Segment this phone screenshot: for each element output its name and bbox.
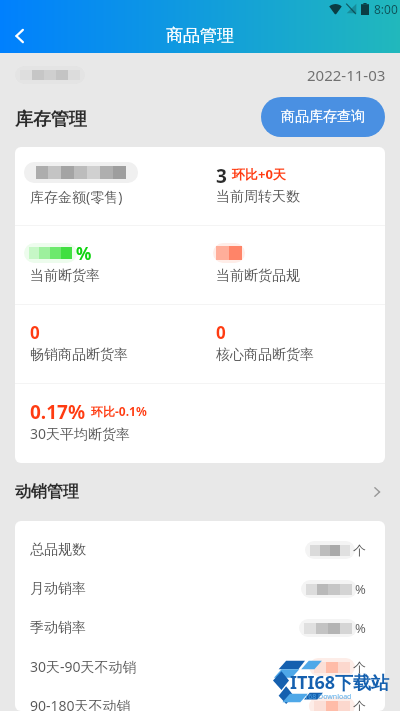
staticText: 季动销率	[30, 619, 86, 637]
button[interactable]: 90-180天不动销	[30, 686, 368, 711]
staticText: 当前断货率	[30, 267, 100, 285]
staticText: 库存管理	[15, 108, 87, 131]
staticText: 当前断货品规	[216, 267, 300, 285]
staticText: 环比+0天	[232, 165, 286, 183]
staticText: 核心商品断货率	[216, 346, 314, 364]
button[interactable]: 动销管理	[15, 463, 385, 521]
staticText: %	[355, 619, 366, 637]
button[interactable]: 商品库存查询	[261, 97, 385, 137]
staticText: 环比-0.1%	[91, 403, 147, 419]
staticText: %	[76, 242, 92, 263]
staticText: IT168 Download	[298, 692, 352, 702]
staticText: 个	[353, 542, 366, 558]
staticText: 畅销商品断货率	[30, 346, 128, 364]
staticText: 商品库存查询	[281, 108, 365, 126]
staticText: 库存金额(零售)	[30, 187, 123, 206]
staticText: 个	[353, 698, 366, 711]
button[interactable]: 月动销率	[30, 569, 368, 608]
button[interactable]: 季动销率	[30, 608, 368, 647]
button[interactable]: 30天-90天不动销	[30, 647, 368, 686]
staticText: 总品规数	[30, 541, 86, 559]
staticText: 30天-90天不动销	[30, 657, 137, 676]
staticText: 8:00	[374, 1, 398, 17]
staticText: 30天平均断货率	[30, 424, 131, 443]
staticText: 90-180天不动销	[30, 696, 131, 711]
staticText: 当前周转天数	[216, 188, 300, 206]
staticText: 0.17%	[30, 399, 86, 420]
staticText: 0	[30, 321, 40, 342]
staticText: 个	[353, 659, 366, 675]
staticText: 0	[216, 321, 226, 342]
staticText: 动销管理	[15, 482, 79, 502]
other: More	[369, 484, 385, 500]
button[interactable]: Back	[0, 18, 40, 53]
staticText: 商品管理	[166, 25, 234, 46]
staticText: 2022-11-03	[307, 65, 386, 85]
button[interactable]: 总品规数	[30, 530, 368, 569]
staticText: ITI68下载站	[290, 670, 389, 695]
staticText: %	[355, 580, 366, 598]
staticText: 月动销率	[30, 580, 86, 598]
staticText: 3	[216, 163, 227, 184]
